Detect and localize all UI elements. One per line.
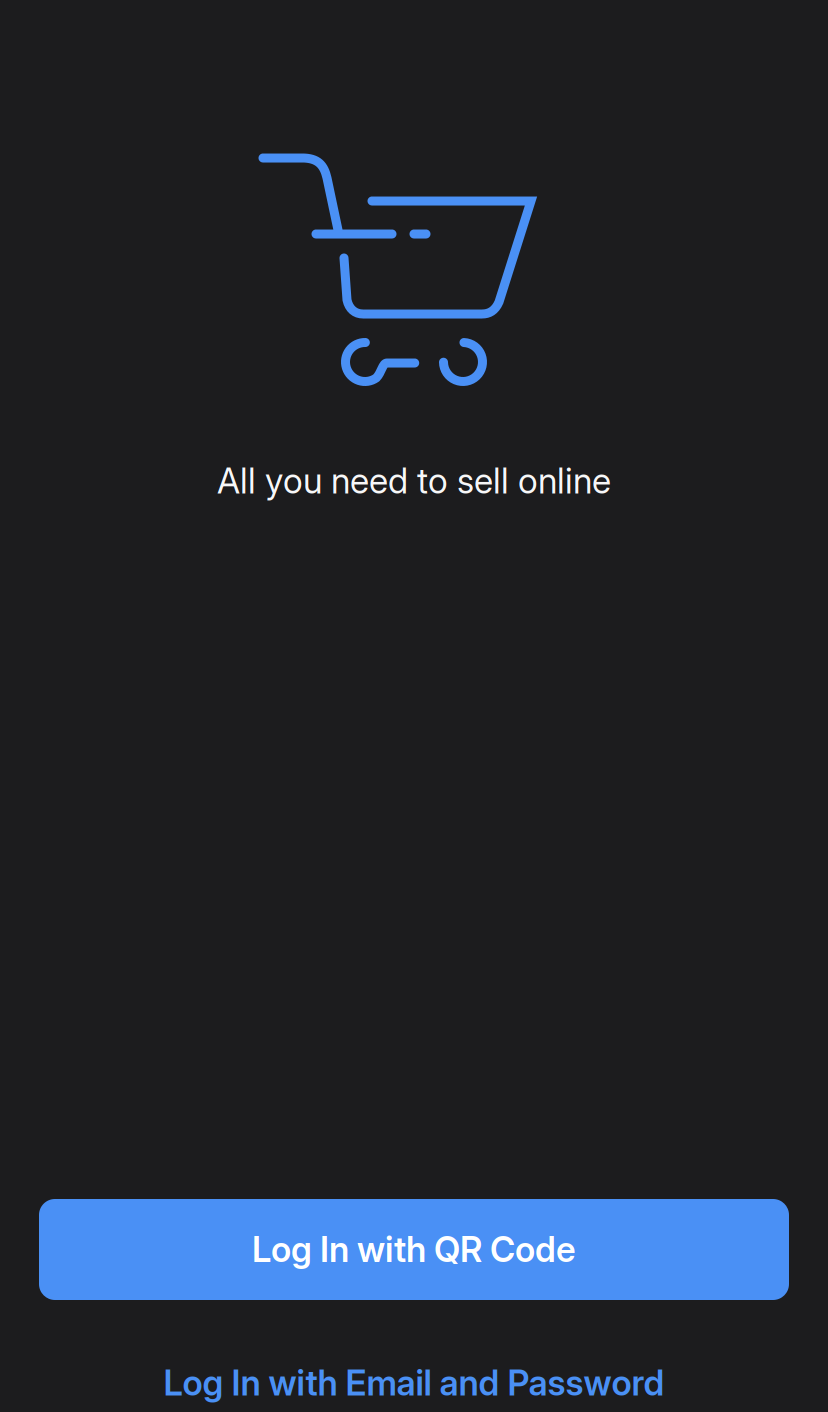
staticText: Log In with Email and Password [163, 1362, 664, 1404]
staticText: All you need to sell online [217, 460, 611, 502]
button[interactable]: Log In with QR Code [39, 1199, 789, 1300]
staticText: Log In with QR Code [252, 1228, 576, 1270]
button[interactable]: Log In with Email and Password [0, 1354, 828, 1412]
